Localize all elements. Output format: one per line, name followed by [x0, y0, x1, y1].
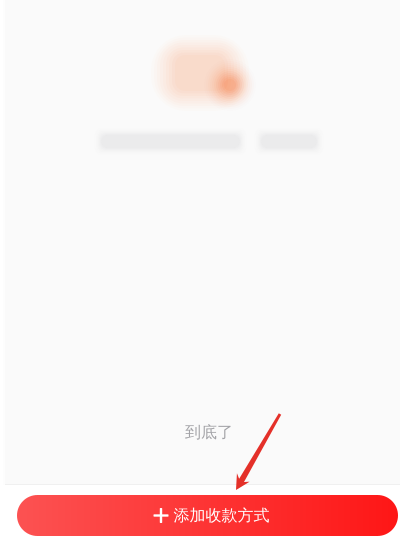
staticText: 到底了: [185, 422, 233, 442]
staticText: 添加收款方式: [173, 506, 269, 525]
button[interactable]: 添加收款方式: [0, 485, 400, 536]
